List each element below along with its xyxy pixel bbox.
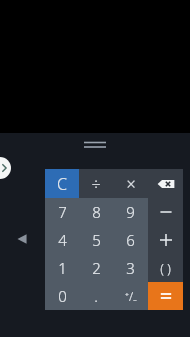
button[interactable]: Expand panel bbox=[0, 157, 11, 179]
button[interactable]: Backspace bbox=[148, 169, 183, 198]
button[interactable]: 7 bbox=[45, 198, 79, 226]
staticText: C bbox=[57, 173, 67, 195]
staticText: ⁺/₋ bbox=[125, 288, 137, 304]
staticText: 1 bbox=[58, 258, 67, 278]
button[interactable]: C bbox=[45, 169, 79, 198]
button[interactable]: Minus bbox=[148, 198, 183, 226]
button[interactable]: × bbox=[113, 169, 148, 198]
staticText: 0 bbox=[58, 286, 67, 306]
staticText: 9 bbox=[126, 202, 135, 222]
staticText: 8 bbox=[92, 202, 101, 222]
button[interactable]: ⁺/₋ bbox=[113, 282, 148, 310]
button[interactable]: 3 bbox=[113, 254, 148, 282]
staticText: 6 bbox=[126, 230, 135, 250]
button[interactable]: 0 bbox=[45, 282, 79, 310]
staticText: 7 bbox=[58, 202, 67, 222]
staticText: 4 bbox=[58, 230, 67, 250]
button[interactable]: Plus bbox=[148, 226, 183, 254]
button[interactable]: 9 bbox=[113, 198, 148, 226]
staticText: ÷ bbox=[91, 173, 101, 195]
staticText: . bbox=[94, 286, 98, 306]
button[interactable]: 6 bbox=[113, 226, 148, 254]
button[interactable]: 8 bbox=[79, 198, 113, 226]
staticText: 3 bbox=[126, 258, 135, 278]
staticText: × bbox=[126, 173, 136, 195]
staticText: 5 bbox=[92, 230, 101, 250]
button[interactable]: 5 bbox=[79, 226, 113, 254]
button[interactable]: ÷ bbox=[79, 169, 113, 198]
button[interactable]: Back bbox=[12, 229, 32, 249]
button[interactable]: Equals bbox=[148, 282, 183, 310]
button[interactable]: 1 bbox=[45, 254, 79, 282]
button[interactable]: Drag handle bbox=[80, 139, 110, 151]
button[interactable]: . bbox=[79, 282, 113, 310]
staticText: 2 bbox=[92, 258, 101, 278]
staticText: ( ) bbox=[160, 259, 171, 277]
button[interactable]: 2 bbox=[79, 254, 113, 282]
button[interactable]: ( ) bbox=[148, 254, 183, 282]
button[interactable]: 4 bbox=[45, 226, 79, 254]
